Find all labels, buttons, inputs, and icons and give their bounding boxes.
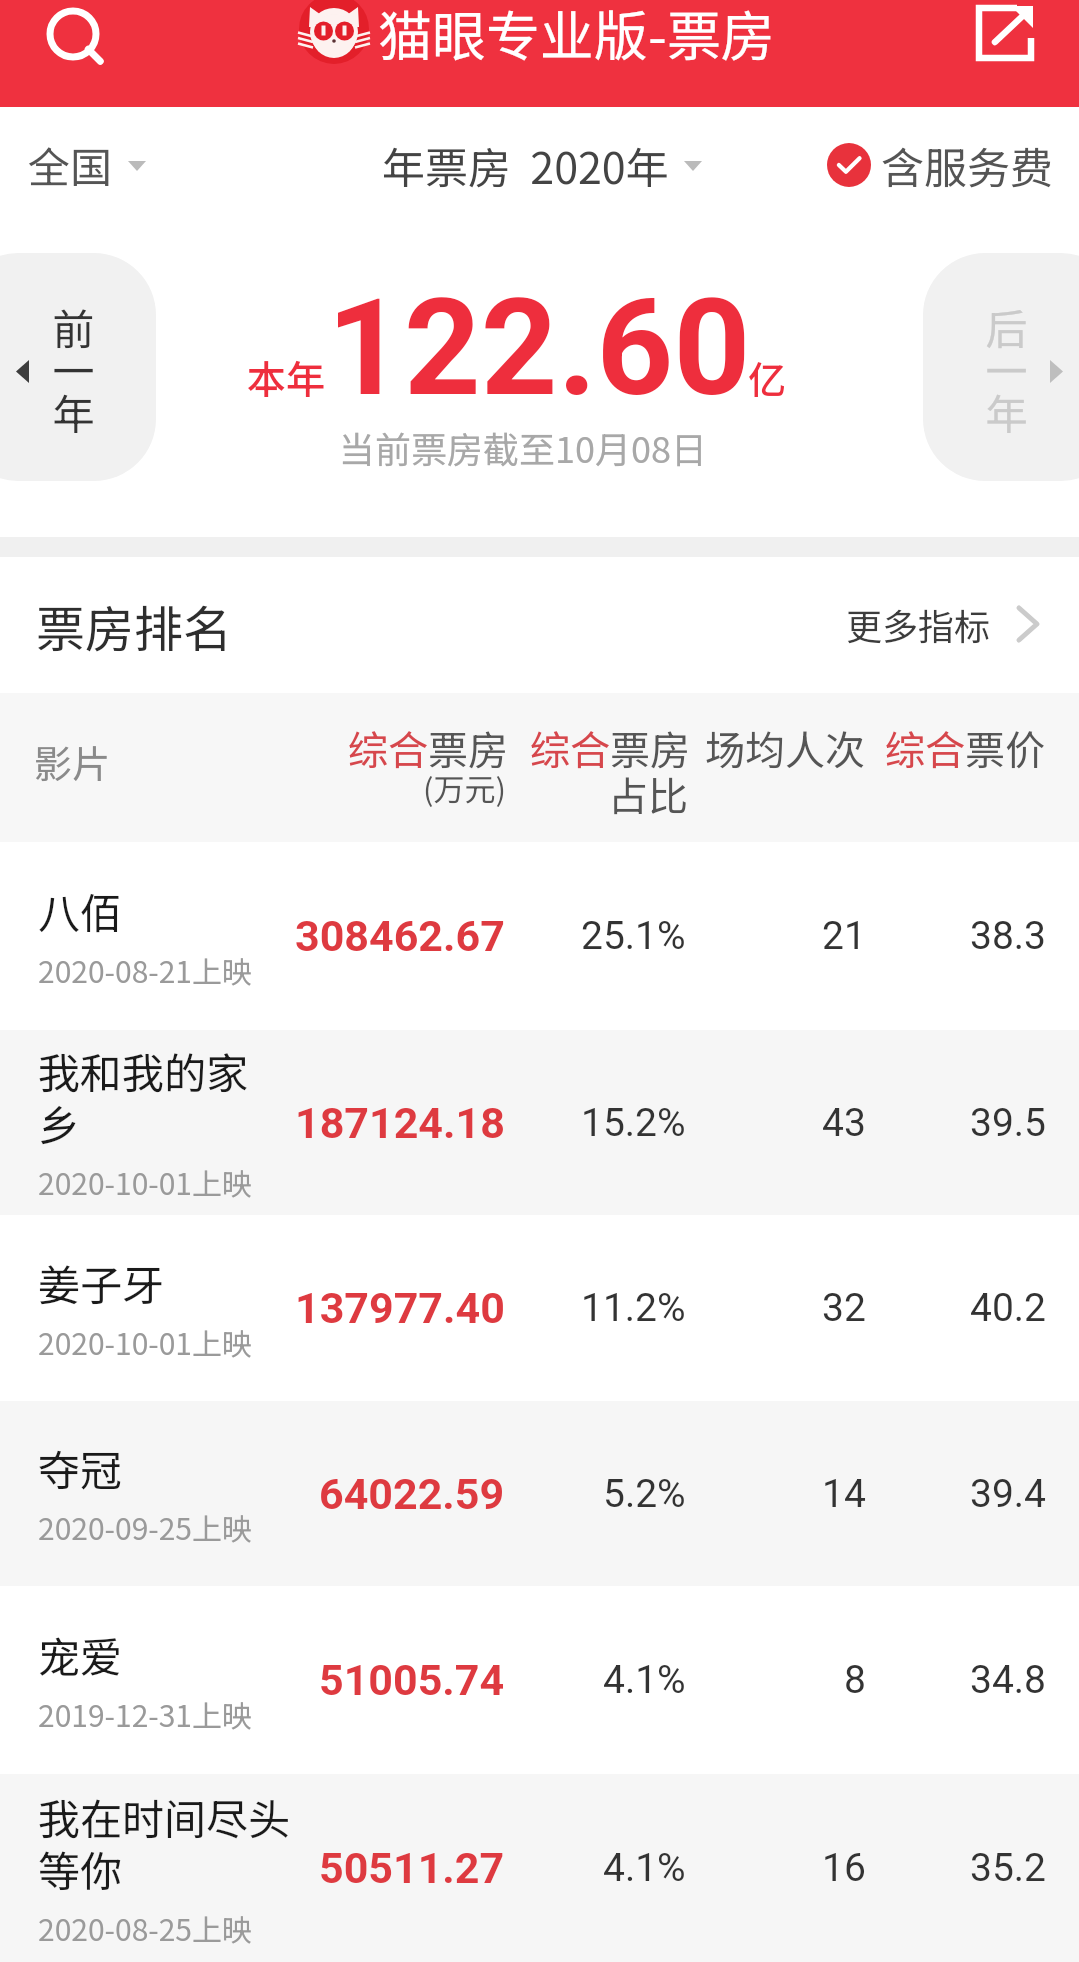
staticText: 8 [844, 1657, 866, 1703]
button[interactable]: 含服务费 [827, 134, 1053, 196]
button[interactable]: Search [40, 0, 112, 72]
button[interactable]: Open in browser [976, 5, 1034, 63]
staticText: 15.2% [581, 1100, 686, 1146]
staticText: 4.1% [603, 1657, 686, 1703]
button[interactable]: 我和我的家 乡 [0, 1030, 1079, 1215]
button[interactable]: 八佰 [0, 842, 1079, 1030]
staticText: 21 [822, 913, 866, 959]
staticText: 综合票房 [348, 719, 508, 777]
staticText: 308462.67 [295, 911, 505, 961]
staticText: 38.3 [970, 913, 1047, 959]
staticText: 含服务费 [881, 134, 1053, 196]
staticText: 八佰 [38, 880, 123, 941]
staticText: 年票房 2020年 [382, 134, 669, 196]
staticText: 187124.18 [295, 1098, 505, 1148]
staticText: 39.4 [970, 1471, 1047, 1517]
staticText: 宠爱 [38, 1624, 123, 1685]
staticText: 14 [822, 1471, 866, 1517]
staticText: 2020-08-25上映 [38, 1906, 253, 1949]
staticText: 2020-10-01上映 [38, 1160, 253, 1203]
staticText: 39.5 [970, 1100, 1047, 1146]
button[interactable]: 我在时间尽头 等你 [0, 1774, 1079, 1962]
staticText: 35.2 [970, 1845, 1047, 1891]
staticText: 11.2% [581, 1285, 686, 1331]
staticText: 更多指标 [846, 598, 991, 650]
staticText: 后 一 年 [985, 296, 1028, 443]
button[interactable]: 宠爱 [0, 1586, 1079, 1774]
staticText: 票房排名 [36, 590, 233, 661]
staticText: 亿 [748, 350, 787, 405]
staticText: 2019-12-31上映 [38, 1692, 253, 1735]
staticText: 122.60 [327, 270, 751, 427]
staticText: 43 [822, 1100, 866, 1146]
staticText: 综合票房 [530, 719, 690, 777]
button[interactable]: 后 一 年 [923, 253, 1079, 481]
staticText: 场均人次 [705, 719, 865, 777]
button[interactable]: 前 一 年 [0, 253, 156, 481]
button[interactable]: 全国 [28, 134, 146, 195]
staticText: 25.1% [581, 913, 686, 959]
staticText: 2020-10-01上映 [38, 1320, 253, 1363]
staticText: 影片 [34, 734, 111, 789]
staticText: 姜子牙 [38, 1252, 165, 1313]
staticText: 137977.40 [295, 1283, 505, 1333]
button[interactable]: 姜子牙 [0, 1215, 1079, 1401]
staticText: 16 [822, 1845, 866, 1891]
staticText: 占比 [608, 765, 688, 823]
staticText: 前 一 年 [52, 296, 95, 443]
staticText: 2020-08-21上映 [38, 948, 253, 991]
staticText: 综合票价 [885, 719, 1045, 777]
staticText: 34.8 [970, 1657, 1047, 1703]
staticText: 4.1% [603, 1845, 686, 1891]
staticText: 猫眼专业版-票房 [378, 0, 775, 71]
button[interactable]: 更多指标 [846, 598, 1040, 650]
staticText: 我在时间尽头 等你 [38, 1786, 291, 1899]
staticText: 64022.59 [319, 1469, 505, 1519]
staticText: 2020-09-25上映 [38, 1505, 253, 1548]
staticText: 当前票房截至10月08日 [339, 421, 707, 473]
staticText: 夺冠 [38, 1437, 123, 1498]
staticText: 本年 [247, 349, 326, 405]
staticText: 32 [822, 1285, 866, 1331]
button[interactable]: 年票房 2020年 [382, 134, 702, 196]
staticText: (万元) [423, 765, 506, 810]
button[interactable]: 夺冠 [0, 1401, 1079, 1586]
staticText: 5.2% [603, 1471, 686, 1517]
staticText: 我和我的家 乡 [38, 1040, 249, 1153]
staticText: 51005.74 [319, 1655, 505, 1705]
staticText: 全国 [28, 134, 113, 195]
staticText: 50511.27 [319, 1843, 505, 1893]
staticText: 40.2 [970, 1285, 1047, 1331]
